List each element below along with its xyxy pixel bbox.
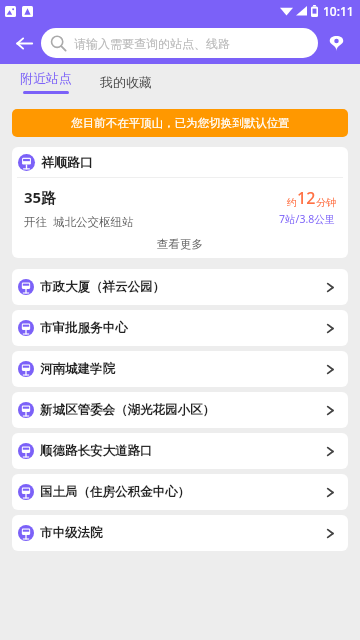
staticText: 请输入需要查询的站点、线路 [74,36,230,51]
staticText: 您目前不在平顶山，已为您切换到默认位置 [71,116,290,130]
staticText: 10:11 [323,3,354,19]
staticText: 市中级法院 [40,525,103,541]
staticText: 约 [287,196,297,209]
staticText: 新城区管委会（湖光花园小区） [40,402,215,418]
staticText: 国土局（住房公积金中心） [40,484,190,500]
staticText: 35路 [24,187,57,207]
staticText: 查看更多 [157,237,203,251]
button[interactable]: 请输入需要查询的站点、线路 [41,28,318,58]
staticText: 7站/3.8公里 [279,212,336,226]
staticText: 附近站点 [20,70,72,86]
button[interactable]: Back [10,29,38,57]
button[interactable]: 查看更多 [12,230,348,258]
staticText: 分钟 [316,196,336,209]
staticText: 祥顺路口 [41,154,93,170]
button[interactable]: 附近站点 [16,70,76,94]
staticText: 我的收藏 [100,74,152,90]
button[interactable]: Location [322,29,350,57]
staticText: 12 [297,187,316,209]
staticText: 顺德路长安大道路口 [40,443,153,459]
button[interactable]: 河南城建学院 [12,351,348,387]
button[interactable]: 国土局（住房公积金中心） [12,474,348,510]
button[interactable]: 新城区管委会（湖光花园小区） [12,392,348,428]
staticText: 开往 城北公交枢纽站 [24,214,134,230]
staticText: 市审批服务中心 [40,320,128,336]
button[interactable]: 您目前不在平顶山，已为您切换到默认位置 [12,109,348,137]
button[interactable]: 我的收藏 [96,70,156,94]
button[interactable]: 顺德路长安大道路口 [12,433,348,469]
button[interactable]: 祥顺路口 [12,147,348,258]
staticText: 河南城建学院 [40,361,115,377]
button[interactable]: 市中级法院 [12,515,348,551]
button[interactable]: 市政大厦（祥云公园） [12,269,348,305]
staticText: 市政大厦（祥云公园） [40,279,165,295]
button[interactable]: 市审批服务中心 [12,310,348,346]
